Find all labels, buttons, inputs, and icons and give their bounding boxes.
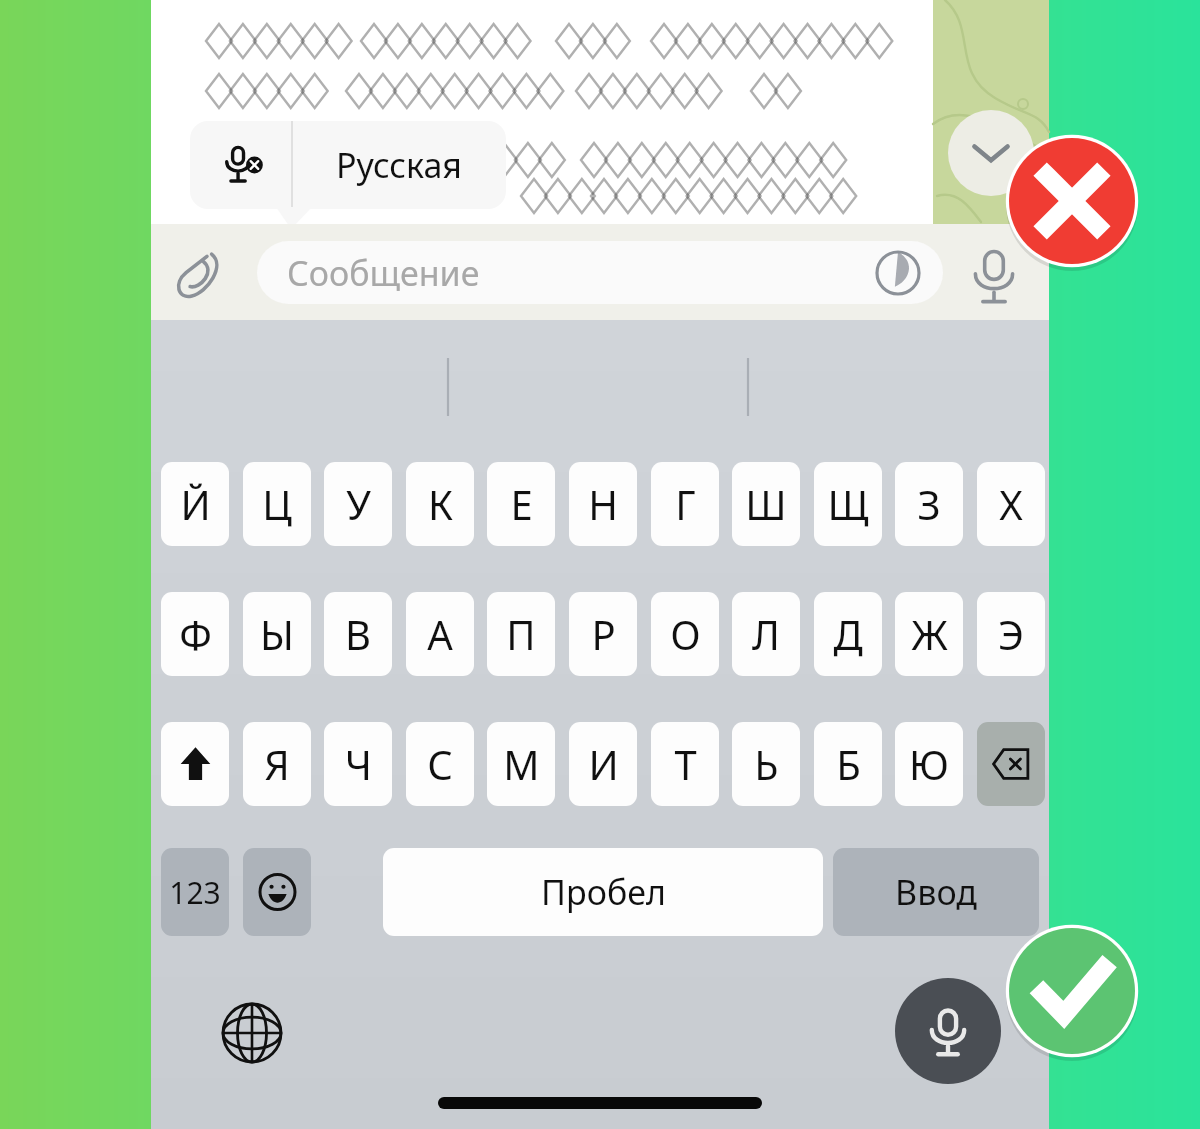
button[interactable]: К [406,462,474,546]
staticText: Л [752,607,780,661]
button[interactable]: Key [243,848,311,936]
button[interactable]: Ч [324,722,392,806]
staticText: Х [999,477,1023,531]
staticText: Ы [260,607,294,661]
button[interactable]: Key [161,722,229,806]
button[interactable]: Л [732,592,800,676]
staticText: Ч [345,737,372,791]
button[interactable]: П [487,592,555,676]
staticText: Ввод [895,869,977,915]
button[interactable]: Э [977,592,1045,676]
button[interactable]: Ввод [833,848,1039,936]
staticText: Ж [911,607,948,661]
button[interactable]: Key [977,722,1045,806]
button[interactable]: 123 [161,848,229,936]
staticText: 123 [169,872,221,913]
button[interactable]: С [406,722,474,806]
button[interactable]: Д [814,592,882,676]
staticText: Г [675,477,696,531]
button[interactable]: Ш [732,462,800,546]
staticText: Ц [262,477,292,531]
staticText: П [506,607,536,661]
staticText: О [670,607,701,661]
staticText: У [346,477,371,531]
button[interactable]: Stickers [875,250,921,296]
staticText: Т [674,737,697,791]
button[interactable]: Т [651,722,719,806]
button[interactable]: Н [569,462,637,546]
button[interactable]: Ы [243,592,311,676]
staticText: С [427,737,453,791]
button[interactable]: Г [651,462,719,546]
button[interactable]: Correct [1004,923,1140,1059]
staticText: Э [998,607,1024,661]
button[interactable]: Х [977,462,1045,546]
staticText: М [503,737,540,791]
staticText: Щ [827,477,869,531]
button[interactable]: Attach file [171,246,229,304]
staticText: Сообщение [287,250,480,296]
button[interactable]: Е [487,462,555,546]
button[interactable]: О [651,592,719,676]
button[interactable]: Пробел [383,848,823,936]
button[interactable]: Ж [895,592,963,676]
staticText: Р [591,607,616,661]
staticText: Б [836,737,861,791]
staticText: И [588,737,619,791]
button[interactable]: Ц [243,462,311,546]
button[interactable]: Incorrect [1004,133,1140,269]
button[interactable]: З [895,462,963,546]
button[interactable]: Б [814,722,882,806]
button[interactable]: М [487,722,555,806]
button[interactable]: Русская [292,121,506,209]
staticText: Н [588,477,618,531]
button[interactable]: Й [161,462,229,546]
button[interactable]: Microphone off [190,121,292,209]
staticText: Я [264,737,290,791]
staticText: В [345,607,371,661]
staticText: А [427,607,453,661]
button[interactable]: Voice input [895,978,1001,1084]
button[interactable]: Switch keyboard language [221,1002,283,1064]
button[interactable]: Сообщение [257,241,943,304]
button[interactable]: Scroll to bottom [948,110,1034,196]
staticText: Ю [909,737,949,791]
button[interactable]: У [324,462,392,546]
button[interactable]: Record voice message [963,244,1025,306]
button[interactable]: И [569,722,637,806]
staticText: Пробел [541,869,666,915]
staticText: Ф [179,607,212,661]
staticText: З [917,477,941,531]
button[interactable]: Я [243,722,311,806]
staticText: К [428,477,453,531]
button[interactable]: Ю [895,722,963,806]
staticText: Д [833,607,863,661]
staticText: Ш [745,477,787,531]
button[interactable]: Щ [814,462,882,546]
button[interactable]: А [406,592,474,676]
button[interactable]: В [324,592,392,676]
staticText: Е [510,477,533,531]
staticText: Й [180,477,211,531]
button[interactable]: Ф [161,592,229,676]
button[interactable]: Р [569,592,637,676]
staticText: Русская [336,142,462,188]
staticText: Ь [754,737,779,791]
button[interactable]: Ь [732,722,800,806]
